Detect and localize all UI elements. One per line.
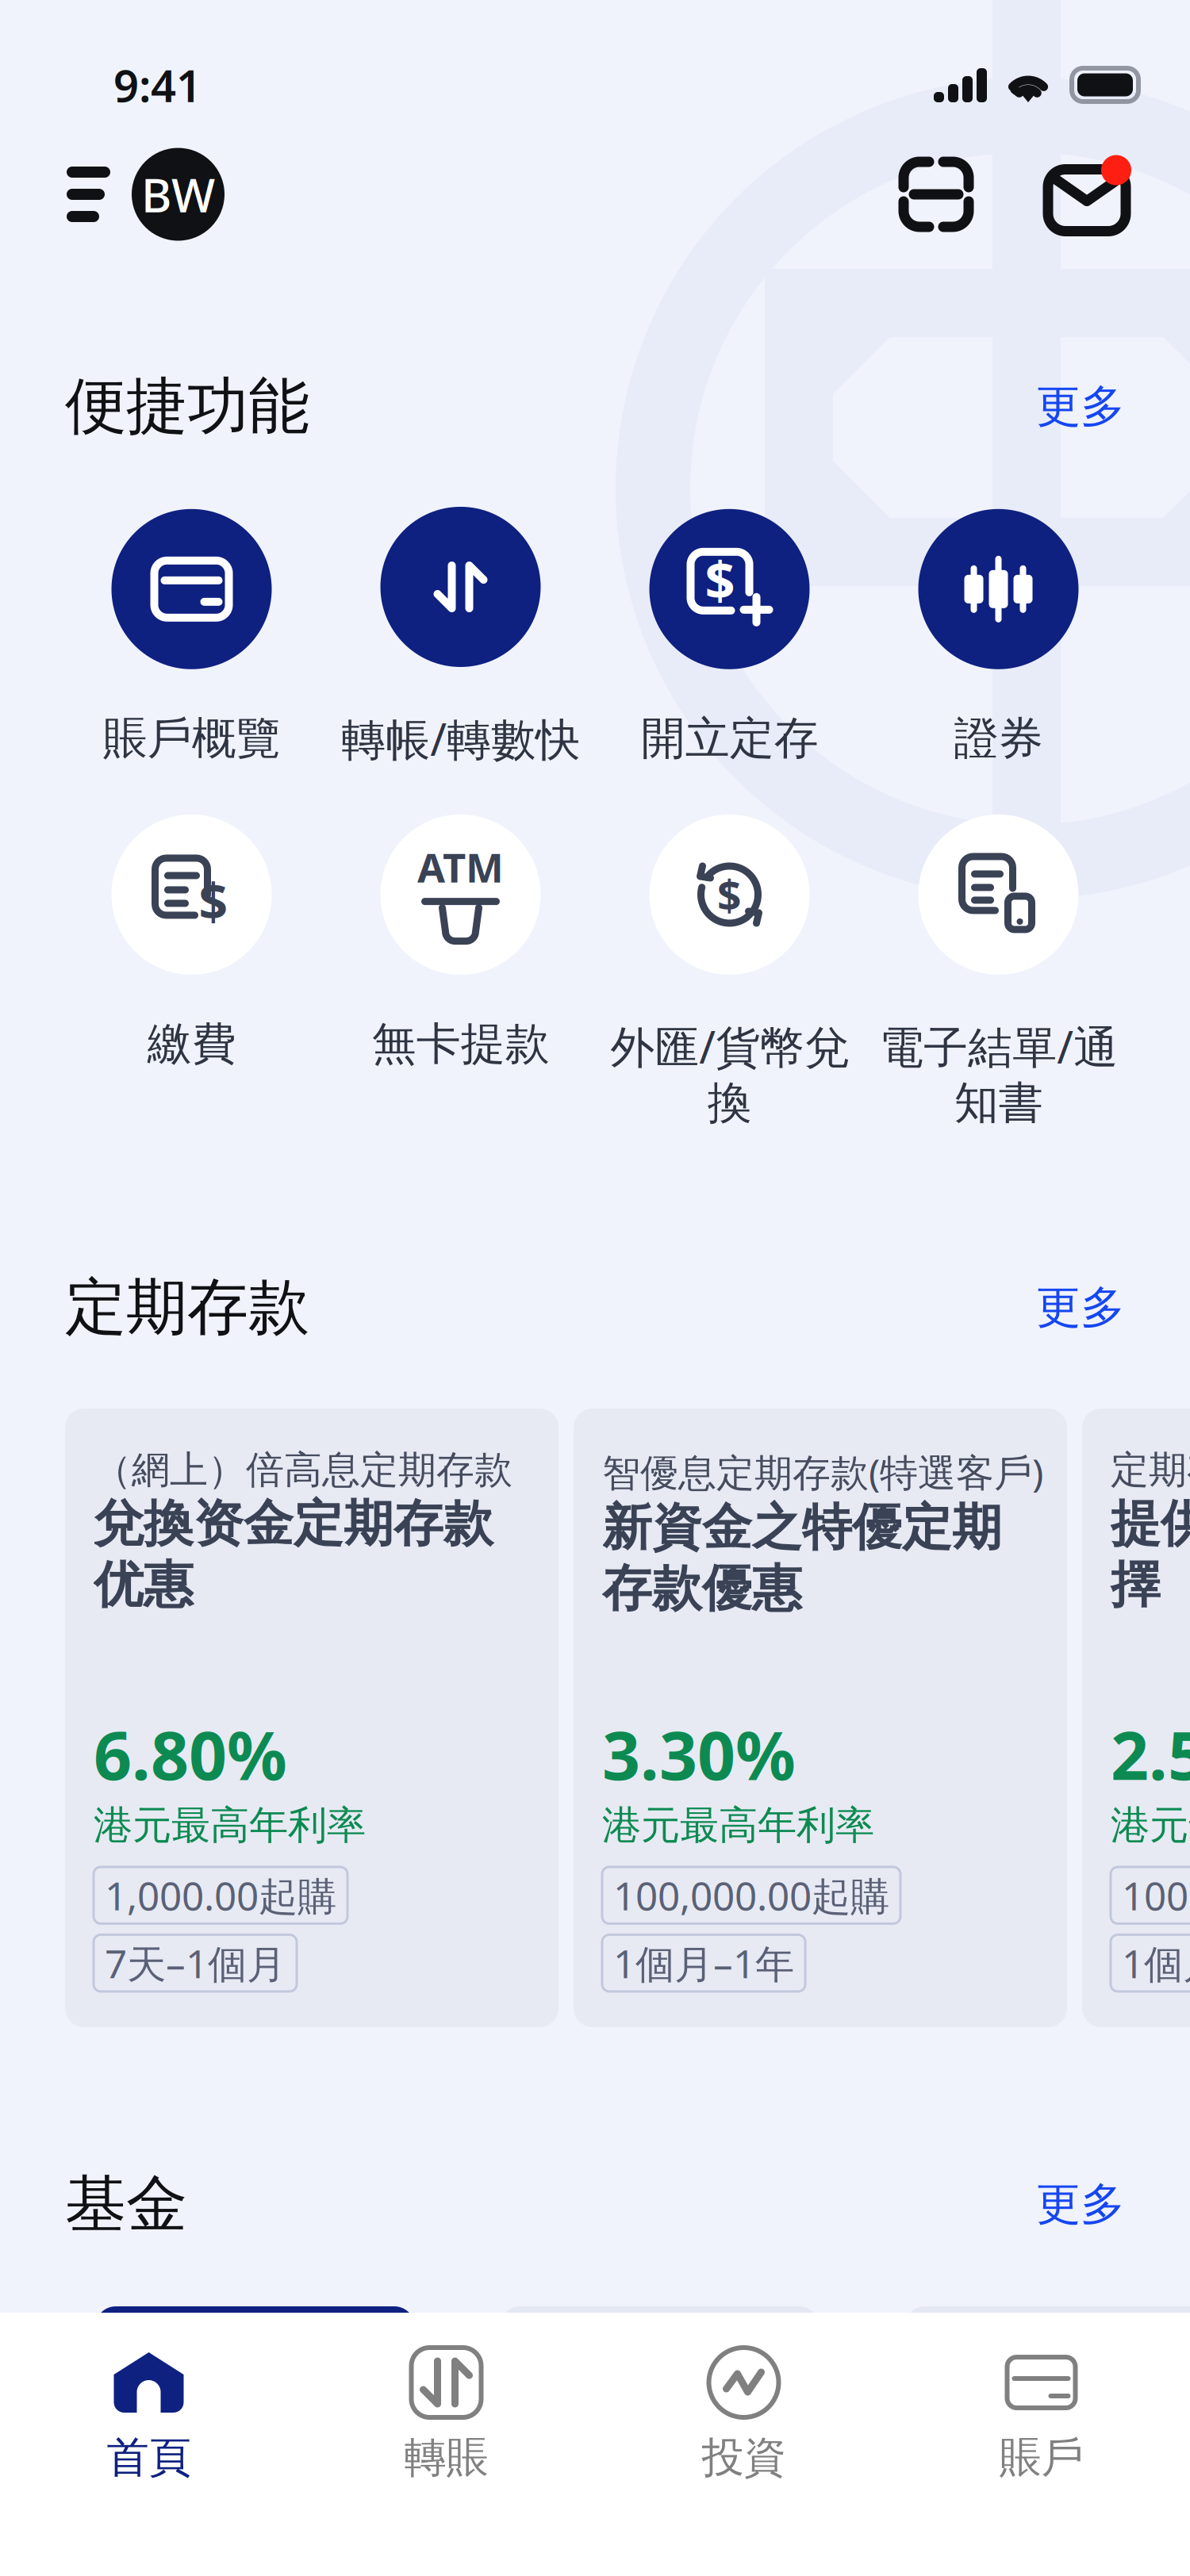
- staticText: 兌換资金定期存款优惠: [94, 1493, 493, 1615]
- button[interactable]: 智優息定期存款(特選客戶): [574, 1409, 1067, 2027]
- button[interactable]: 電子結單/通知書: [864, 815, 1133, 1130]
- staticText: 更多: [1036, 2177, 1125, 2232]
- staticText: 100,000.00起購: [613, 1869, 889, 1921]
- button[interactable]: 投資: [595, 2313, 892, 2576]
- staticText: 首頁: [107, 2432, 191, 2484]
- staticText: 7天–1個月: [105, 1937, 286, 1989]
- staticText: 定期存款: [1111, 1447, 1190, 1493]
- button[interactable]: 賬戶: [892, 2313, 1190, 2576]
- button[interactable]: 轉賬: [297, 2313, 595, 2576]
- staticText: $: [199, 867, 228, 934]
- staticText: 2.50%: [1111, 1710, 1190, 1798]
- button[interactable]: $: [595, 815, 864, 1130]
- staticText: 6.80%: [94, 1710, 287, 1798]
- staticText: 更多: [1036, 1280, 1125, 1335]
- button[interactable]: 定期存款: [1082, 1409, 1190, 2027]
- staticText: 100,000.00起購: [1122, 1869, 1190, 1921]
- staticText: 3.30%: [602, 1710, 796, 1798]
- button[interactable]: Menu and profile: [67, 148, 225, 241]
- staticText: 定期存款: [65, 1270, 309, 1345]
- staticText: 開立定存: [641, 711, 818, 766]
- staticText: 基金: [65, 2167, 187, 2242]
- button[interactable]: 更多: [1036, 379, 1125, 434]
- button[interactable]: 轉帳/轉數快: [326, 507, 595, 768]
- staticText: 港元最高年利率: [602, 1801, 874, 1850]
- button[interactable]: 更多: [1036, 1280, 1125, 1335]
- button[interactable]: （網上）倍高息定期存款: [65, 1409, 559, 2027]
- staticText: 9:41: [113, 55, 202, 114]
- button[interactable]: 證券: [864, 509, 1133, 766]
- button[interactable]: Messages: [1042, 152, 1131, 237]
- staticText: 投資: [702, 2432, 786, 2484]
- staticText: 賬戶概覽: [103, 711, 280, 766]
- button[interactable]: 更多: [1036, 2177, 1125, 2232]
- staticText: 港元最高年利率: [94, 1801, 366, 1850]
- staticText: 1,000.00起購: [105, 1869, 336, 1921]
- staticText: $: [705, 544, 735, 615]
- staticText: 外匯/貨幣兌換: [610, 1017, 849, 1130]
- staticText: 更多: [1036, 379, 1125, 434]
- button[interactable]: $: [595, 509, 864, 766]
- staticText: （網上）倍高息定期存款: [94, 1447, 512, 1493]
- button[interactable]: 首頁: [0, 2313, 297, 2576]
- button[interactable]: Scan: [898, 156, 974, 232]
- staticText: $: [717, 867, 742, 923]
- staticText: 提供多種貨幣之選擇: [1111, 1493, 1190, 1615]
- staticText: 轉帳/轉數快: [341, 709, 580, 768]
- staticText: 便捷功能: [65, 369, 309, 444]
- staticText: 繳費: [147, 1017, 236, 1071]
- staticText: 證券: [954, 711, 1043, 766]
- staticText: 無卡提款: [372, 1017, 549, 1071]
- staticText: 轉賬: [404, 2432, 488, 2484]
- button[interactable]: ATM: [326, 815, 595, 1071]
- staticText: 1個月–1年: [613, 1937, 794, 1989]
- staticText: 電子結單/通知書: [879, 1017, 1118, 1130]
- button[interactable]: 賬戶概覽: [57, 509, 326, 766]
- staticText: ATM: [417, 840, 504, 894]
- staticText: 1個月–1年: [1122, 1937, 1190, 1989]
- staticText: 智優息定期存款(特選客戶): [602, 1447, 1043, 1497]
- staticText: 新資金之特優定期存款優惠: [602, 1497, 1002, 1619]
- staticText: 港元最高年利率: [1111, 1801, 1190, 1850]
- button[interactable]: $: [57, 815, 326, 1071]
- staticText: BW: [141, 163, 215, 225]
- staticText: 賬戶: [999, 2432, 1083, 2484]
